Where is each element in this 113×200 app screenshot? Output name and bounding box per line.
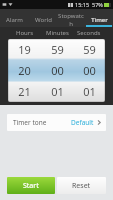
staticText: Timer bbox=[91, 16, 108, 24]
button[interactable]: 20 bbox=[8, 60, 41, 81]
staticText: 15:15 bbox=[75, 1, 90, 8]
button[interactable]: Stopwatch bbox=[57, 9, 85, 27]
button[interactable]: 00 bbox=[41, 60, 73, 81]
staticText: Reset bbox=[72, 181, 91, 191]
button[interactable]: 59 bbox=[73, 39, 105, 60]
staticText: 21 bbox=[18, 84, 31, 99]
staticText: World bbox=[35, 16, 52, 24]
button[interactable]: 01 bbox=[41, 81, 73, 102]
staticText: Timer tone bbox=[13, 118, 47, 127]
button[interactable]: 59 bbox=[41, 39, 73, 60]
staticText: 57% bbox=[92, 1, 103, 8]
button[interactable]: 01 bbox=[73, 81, 105, 102]
button[interactable]: Timer bbox=[85, 9, 113, 27]
button[interactable]: 19 bbox=[8, 39, 41, 60]
staticText: 59 bbox=[51, 42, 64, 57]
staticText: Alarm bbox=[6, 16, 23, 24]
button[interactable]: World bbox=[29, 9, 57, 27]
staticText: Default bbox=[71, 118, 94, 127]
button[interactable]: Start bbox=[7, 177, 55, 194]
staticText: 00 bbox=[51, 63, 64, 78]
staticText: Hours bbox=[16, 29, 34, 37]
button[interactable]: 00 bbox=[73, 60, 105, 81]
staticText: 01 bbox=[51, 84, 64, 99]
staticText: 59 bbox=[83, 42, 96, 57]
staticText: 20 bbox=[18, 63, 31, 78]
staticText: Minutes bbox=[46, 29, 69, 37]
staticText: Seconds bbox=[77, 29, 101, 37]
staticText: Stopwatch bbox=[57, 12, 85, 27]
button[interactable]: Reset bbox=[57, 177, 106, 194]
staticText: Start bbox=[23, 181, 39, 191]
staticText: 00 bbox=[83, 63, 96, 78]
button[interactable]: Timer tone bbox=[7, 114, 106, 131]
button[interactable]: Alarm bbox=[0, 9, 29, 27]
button[interactable]: 21 bbox=[8, 81, 41, 102]
staticText: 01 bbox=[83, 84, 96, 99]
staticText: 19 bbox=[18, 42, 31, 57]
